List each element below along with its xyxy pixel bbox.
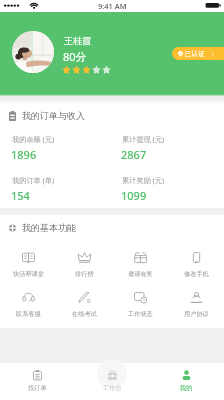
staticText: 王桂霞 [64, 35, 91, 46]
staticText: 修改手机 [184, 270, 209, 278]
button[interactable]: 我的订单 (单) [12, 175, 112, 207]
staticText: 2867 [121, 147, 147, 162]
button[interactable]: 已认证 [178, 47, 224, 60]
button[interactable]: 我的余额 (元) [12, 134, 112, 166]
staticText: 邀请有奖 [128, 270, 153, 278]
staticText: 累计提现 (元) [122, 134, 165, 144]
staticText: 我的基本功能 [22, 222, 76, 233]
staticText: 1099 [121, 188, 147, 203]
button[interactable]: 工作状态 [112, 292, 168, 324]
staticText: 在线考试 [72, 310, 97, 318]
staticText: 已认证 [185, 50, 205, 58]
staticText: 累计奖励 (元) [122, 175, 165, 185]
button[interactable]: Profile photo [12, 31, 54, 73]
button[interactable]: 累计提现 (元) [122, 134, 222, 166]
button[interactable]: 快活帮课堂 [0, 252, 56, 284]
staticText: 找订单 [28, 384, 47, 392]
button[interactable]: 用户协议 [168, 292, 224, 324]
button[interactable]: 在线考试 [56, 292, 112, 324]
staticText: 工作台 [103, 384, 122, 392]
staticText: 我的订单与收入 [22, 110, 85, 121]
staticText: 联系客服 [16, 310, 41, 318]
button[interactable]: 联系客服 [0, 292, 56, 324]
button[interactable]: 找订单 [0, 363, 75, 400]
staticText: 1896 [11, 147, 37, 162]
staticText: 我的 [180, 384, 193, 392]
button[interactable]: 我的 [149, 363, 224, 400]
button[interactable]: 排行榜 [56, 252, 112, 284]
staticText: 工作状态 [128, 310, 153, 318]
staticText: 用户协议 [184, 310, 209, 318]
button[interactable]: 修改手机 [168, 252, 224, 284]
staticText: 我的订单 (单) [12, 175, 55, 185]
button[interactable]: 累计奖励 (元) [122, 175, 222, 207]
staticText: 154 [11, 188, 30, 203]
staticText: 9:41 AM [98, 1, 127, 11]
button[interactable]: 邀请有奖 [112, 252, 168, 284]
staticText: 快活帮课堂 [13, 270, 44, 278]
button[interactable]: 工作台 [75, 363, 150, 400]
staticText: 我的余额 (元) [12, 134, 55, 144]
staticText: 80分 [63, 49, 87, 64]
staticText: 排行榜 [75, 270, 94, 278]
